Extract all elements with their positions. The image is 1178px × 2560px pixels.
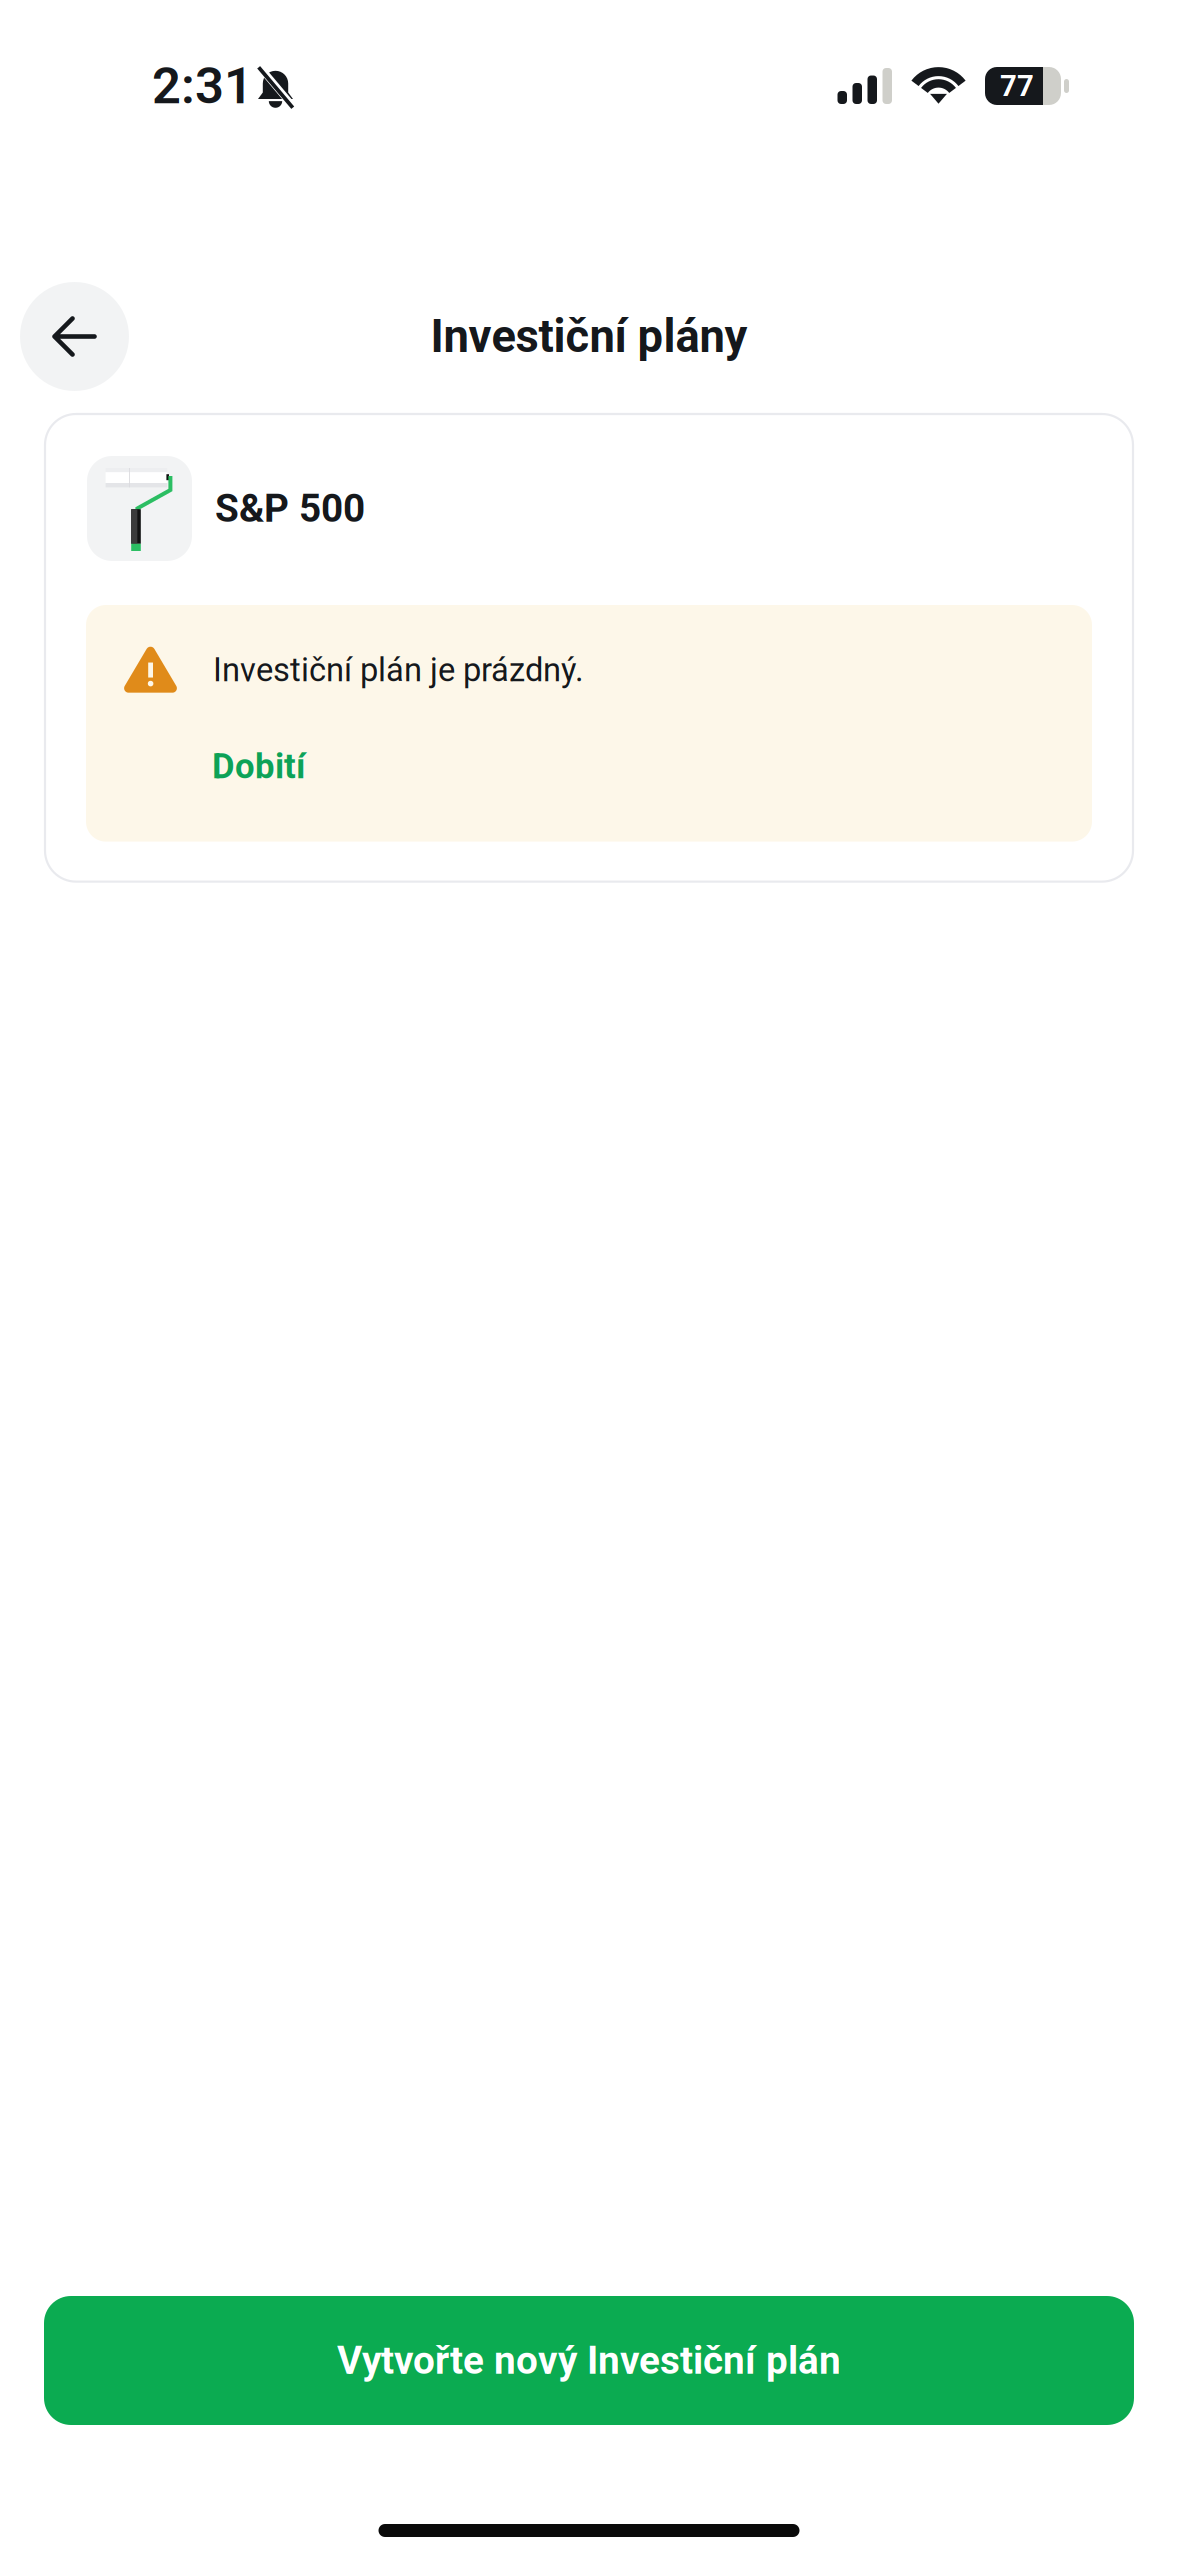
staticText: 2:31 [152,56,253,116]
button[interactable]: Vytvořte nový Investiční plán [44,2296,1134,2425]
staticText: 77 [1000,69,1034,103]
button[interactable]: Dobití [86,694,335,842]
button[interactable]: Back [20,282,129,391]
staticText: Investiční plány [430,310,747,363]
staticText: S&P 500 [215,486,365,531]
staticText: Vytvořte nový Investiční plán [337,2338,841,2383]
staticText: Dobití [212,746,305,787]
staticText: Investiční plán je prázdný. [213,651,584,689]
